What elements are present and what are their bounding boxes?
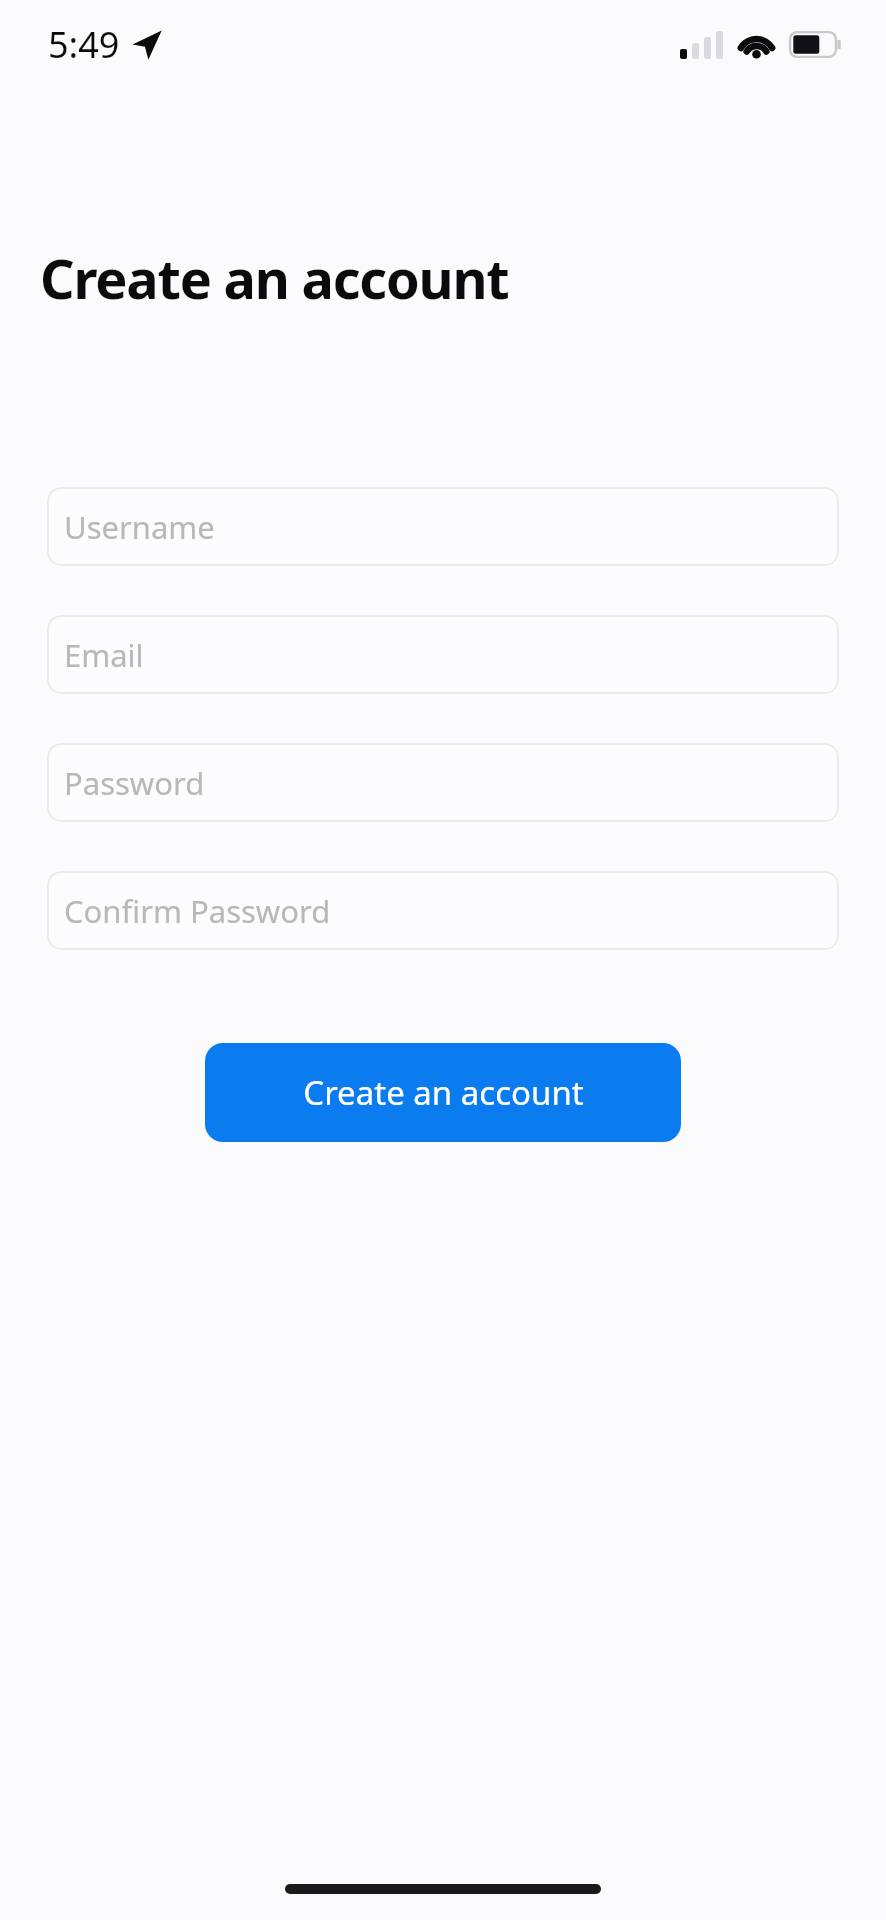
button[interactable]: Username bbox=[47, 487, 839, 566]
other: Location active bbox=[131, 29, 162, 60]
button[interactable]: Confirm Password bbox=[47, 871, 839, 950]
staticText: Password bbox=[64, 762, 205, 804]
other: Cellular signal bbox=[680, 29, 724, 59]
other: Battery bbox=[789, 31, 842, 58]
staticText: 5:49 bbox=[48, 20, 120, 69]
other: Wi-Fi bbox=[737, 30, 776, 58]
button[interactable]: Password bbox=[47, 743, 839, 822]
staticText: Create an account bbox=[303, 1070, 584, 1115]
button[interactable]: Create an account bbox=[205, 1043, 681, 1142]
staticText: Create an account bbox=[40, 241, 509, 315]
staticText: Email bbox=[64, 634, 144, 676]
staticText: Username bbox=[64, 506, 215, 548]
button[interactable]: Email bbox=[47, 615, 839, 694]
staticText: Confirm Password bbox=[64, 890, 331, 932]
